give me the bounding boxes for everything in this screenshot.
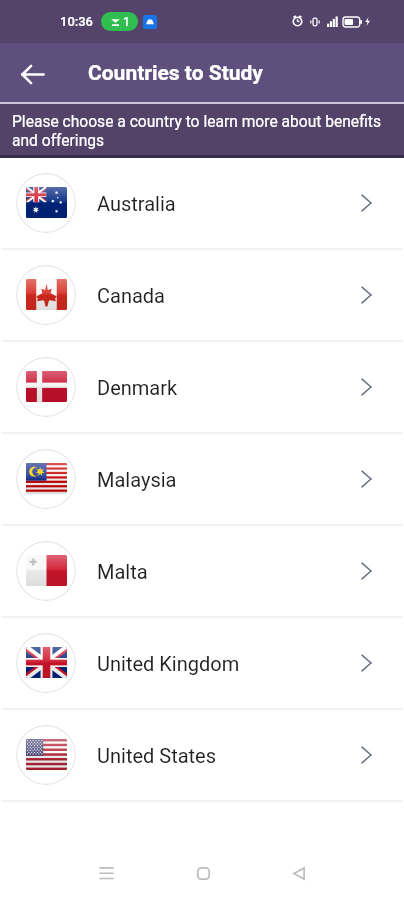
staticText: Malaysia: [97, 468, 177, 491]
button[interactable]: Back: [12, 54, 52, 94]
staticText: Countries to Study: [88, 61, 263, 86]
staticText: United States: [97, 744, 217, 767]
staticText: 10:36: [60, 14, 94, 29]
button[interactable]: Recent apps: [83, 850, 129, 896]
button[interactable]: Home: [180, 850, 226, 896]
button[interactable]: United States: [2, 710, 402, 800]
button[interactable]: Denmark: [2, 342, 402, 432]
button[interactable]: Malaysia: [2, 434, 402, 524]
staticText: 1: [123, 15, 130, 29]
button[interactable]: Canada: [2, 250, 402, 340]
button[interactable]: Australia: [2, 158, 402, 248]
staticText: United Kingdom: [97, 652, 240, 675]
button[interactable]: Back: [276, 850, 322, 896]
staticText: Canada: [97, 284, 165, 307]
button[interactable]: United Kingdom: [2, 618, 402, 708]
staticText: Malta: [97, 560, 148, 583]
staticText: Please choose a country to learn more ab…: [12, 113, 386, 150]
staticText: Denmark: [97, 376, 178, 399]
button[interactable]: Malta: [2, 526, 402, 616]
staticText: Australia: [97, 192, 176, 215]
